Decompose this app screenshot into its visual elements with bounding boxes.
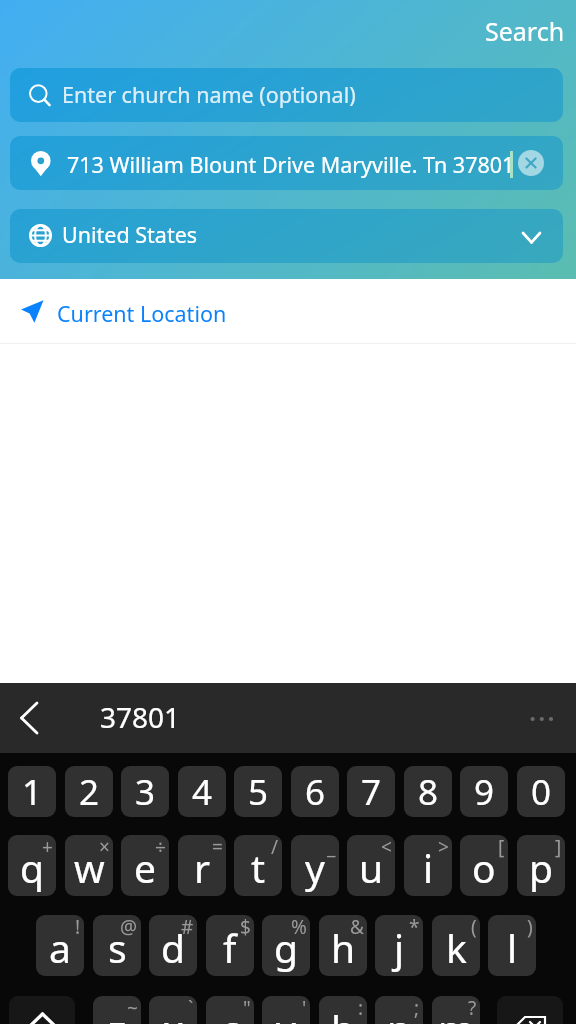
button[interactable]: Clear text xyxy=(518,150,544,176)
button[interactable]: s xyxy=(93,915,141,976)
staticText: Current Location xyxy=(57,299,227,328)
button[interactable]: 9 xyxy=(460,766,508,817)
staticText: ` xyxy=(188,996,194,1021)
button[interactable]: More options xyxy=(521,700,559,738)
staticText: 4 xyxy=(192,768,213,816)
button[interactable]: Back xyxy=(8,696,52,740)
staticText: 37801 xyxy=(100,698,181,736)
staticText: 2 xyxy=(79,768,100,816)
staticText: p xyxy=(529,841,553,894)
staticText: ÷ xyxy=(155,835,166,860)
button[interactable]: b xyxy=(319,996,367,1024)
button[interactable]: x xyxy=(149,996,197,1024)
staticText: c xyxy=(221,1002,240,1024)
button[interactable]: o xyxy=(460,835,508,896)
staticText: @ xyxy=(120,915,138,940)
button[interactable]: l xyxy=(488,915,536,976)
staticText: [ xyxy=(498,835,505,860)
staticText: o xyxy=(472,841,496,894)
button[interactable]: e xyxy=(121,835,169,896)
staticText: q xyxy=(20,841,44,894)
staticText: f xyxy=(223,921,237,974)
staticText: ; xyxy=(414,996,420,1021)
staticText: / xyxy=(271,835,279,860)
button[interactable]: United States xyxy=(10,209,563,263)
staticText: # xyxy=(181,915,194,940)
button[interactable]: m xyxy=(432,996,480,1024)
staticText: w xyxy=(74,841,105,894)
staticText: & xyxy=(350,915,364,940)
staticText: n xyxy=(387,1002,412,1024)
button[interactable]: 2 xyxy=(65,766,113,817)
staticText: ' xyxy=(302,996,307,1021)
staticText: " xyxy=(243,996,251,1021)
button[interactable]: f xyxy=(206,915,254,976)
staticText: v xyxy=(276,1002,296,1024)
staticText: d xyxy=(161,921,185,974)
button[interactable]: Shift xyxy=(9,996,75,1024)
staticText: 1 xyxy=(22,768,43,816)
staticText: y xyxy=(305,841,325,894)
staticText: 0 xyxy=(531,768,552,816)
staticText: i xyxy=(423,841,434,894)
staticText: h xyxy=(331,921,356,974)
button[interactable]: j xyxy=(375,915,423,976)
button[interactable]: Backspace xyxy=(497,996,563,1024)
button[interactable]: 6 xyxy=(291,766,339,817)
button[interactable]: c xyxy=(206,996,254,1024)
other: Expand xyxy=(519,224,543,248)
button[interactable]: a xyxy=(36,915,84,976)
button[interactable]: d xyxy=(149,915,197,976)
button[interactable]: n xyxy=(375,996,423,1024)
staticText: + xyxy=(42,835,53,860)
staticText: = xyxy=(212,835,223,860)
button[interactable]: r xyxy=(178,835,226,896)
button[interactable]: 4 xyxy=(178,766,226,817)
button[interactable]: i xyxy=(404,835,452,896)
button[interactable]: p xyxy=(517,835,565,896)
button[interactable]: 3 xyxy=(121,766,169,817)
staticText: % xyxy=(291,915,307,940)
staticText: 5 xyxy=(248,768,269,816)
staticText: ~ xyxy=(127,996,138,1021)
button[interactable]: 7 xyxy=(347,766,395,817)
button[interactable]: t xyxy=(234,835,282,896)
staticText: Enter church name (optional) xyxy=(62,80,356,109)
staticText: r xyxy=(194,841,211,894)
staticText: j xyxy=(394,921,405,974)
button[interactable]: q xyxy=(8,835,56,896)
button[interactable]: Current Location xyxy=(0,279,576,344)
staticText: _ xyxy=(327,835,336,860)
staticText: 7 xyxy=(361,768,382,816)
button[interactable]: u xyxy=(347,835,395,896)
button[interactable]: 0 xyxy=(517,766,565,817)
button[interactable]: h xyxy=(319,915,367,976)
staticText: k xyxy=(446,921,467,974)
button[interactable]: Search xyxy=(477,8,573,54)
staticText: < xyxy=(381,835,392,860)
button[interactable]: v xyxy=(262,996,310,1024)
staticText: a xyxy=(49,921,71,974)
staticText: ( xyxy=(471,915,477,940)
staticText: United States xyxy=(62,220,198,249)
button[interactable]: 1 xyxy=(8,766,56,817)
staticText: 6 xyxy=(305,768,326,816)
staticText: ! xyxy=(75,915,81,940)
staticText: 3 xyxy=(135,768,156,816)
button[interactable]: k xyxy=(432,915,480,976)
button[interactable]: y xyxy=(291,835,339,896)
button[interactable]: g xyxy=(262,915,310,976)
button[interactable]: Enter church name (optional) xyxy=(10,68,563,122)
staticText: 9 xyxy=(474,768,495,816)
staticText: ? xyxy=(468,996,477,1021)
button[interactable]: 5 xyxy=(234,766,282,817)
staticText: > xyxy=(438,835,449,860)
staticText: ) xyxy=(527,915,533,940)
button[interactable]: w xyxy=(65,835,113,896)
button[interactable]: 8 xyxy=(404,766,452,817)
staticText: × xyxy=(99,835,110,860)
button[interactable]: z xyxy=(93,996,141,1024)
staticText: ] xyxy=(555,835,562,860)
staticText: s xyxy=(108,921,127,974)
button[interactable]: 713 William Blount Drive Maryville. Tn 3… xyxy=(10,136,563,190)
